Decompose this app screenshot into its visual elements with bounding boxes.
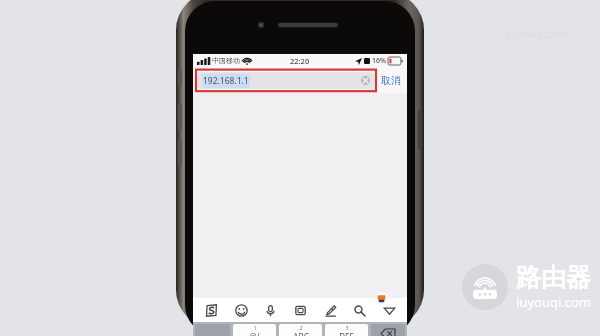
staticText: 取消	[381, 74, 401, 87]
staticText: 3	[345, 324, 349, 331]
button[interactable]: 192.168.1.1	[197, 72, 374, 89]
other: Mute switch	[178, 70, 182, 86]
button[interactable]: 2	[279, 324, 322, 336]
button[interactable]: 1	[233, 324, 276, 336]
button[interactable]: Voice input	[262, 302, 278, 318]
staticText: 22:20	[290, 56, 310, 66]
button[interactable]: Handwriting	[322, 302, 338, 318]
staticText: luyouqi.com	[516, 293, 592, 311]
button[interactable]: Search	[351, 302, 367, 318]
staticText: 中国移动	[212, 56, 240, 65]
staticText: 1	[253, 324, 257, 331]
staticText: 路由器	[516, 262, 591, 293]
button[interactable]: Delete	[371, 324, 405, 336]
button[interactable]: Emoji	[233, 302, 249, 318]
button[interactable]: 3	[325, 324, 368, 336]
staticText: 16%	[372, 56, 386, 66]
staticText: DEF	[339, 331, 354, 336]
button[interactable]: Hide keyboard	[381, 302, 397, 318]
button[interactable]: Stickers	[292, 302, 308, 318]
staticText: 192.168.1.1	[203, 75, 249, 87]
staticText: ABC	[293, 331, 309, 336]
staticText: @/	[249, 331, 260, 336]
staticText: 2	[299, 324, 303, 331]
button[interactable]: Clear text	[361, 76, 370, 85]
button[interactable]: 取消	[379, 71, 403, 90]
button[interactable]: Notification	[375, 292, 388, 305]
button[interactable]: Sogou input	[203, 302, 219, 318]
